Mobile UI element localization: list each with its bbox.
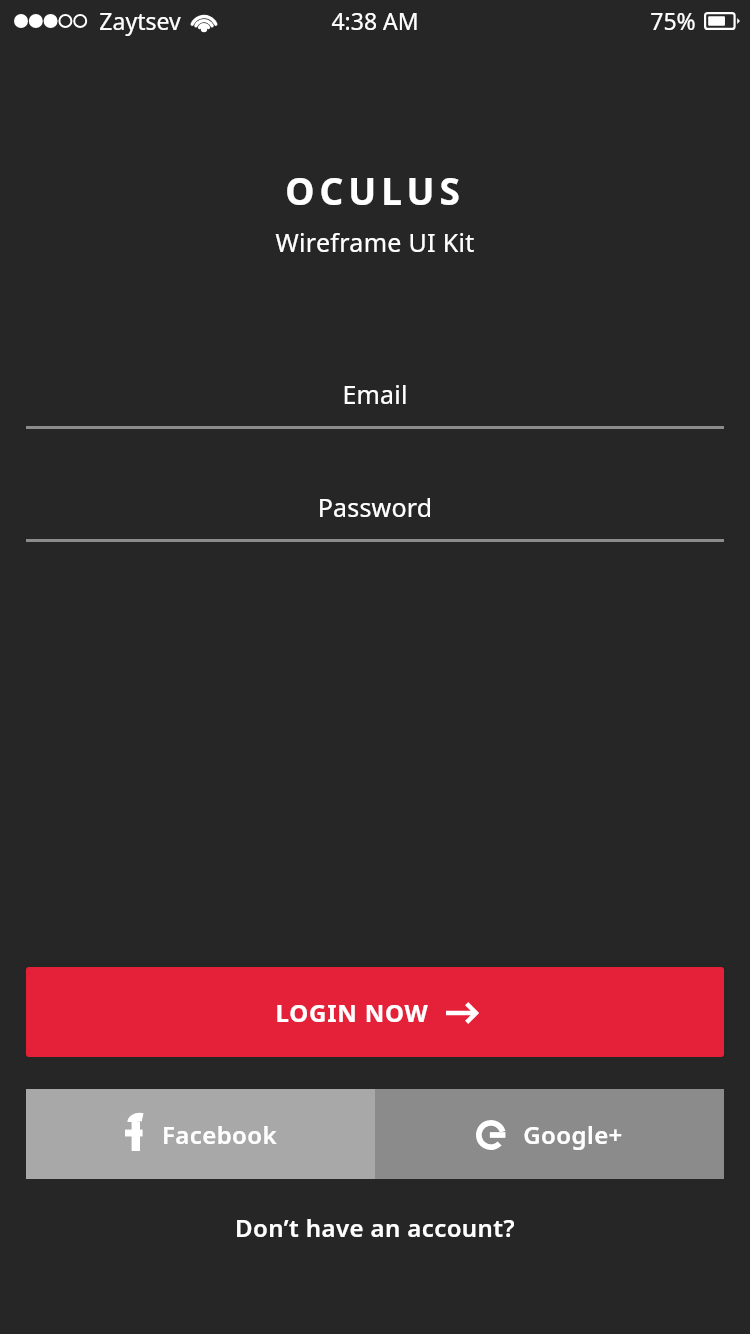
staticText: Don’t have an account? (235, 1211, 515, 1244)
staticText: Email (26, 377, 724, 411)
other: Sign in with Facebook (125, 1117, 145, 1151)
staticText: Google+ (523, 1118, 623, 1151)
staticText: OCULUS (0, 165, 750, 215)
other: Sign in with Google Plus (476, 1120, 506, 1150)
staticText: Facebook (162, 1118, 277, 1151)
button[interactable]: Password (26, 490, 724, 542)
button[interactable]: Don’t have an account? (0, 1211, 750, 1244)
button[interactable]: Sign in with Google Plus (375, 1089, 724, 1179)
staticText: Wireframe UI Kit (0, 225, 750, 259)
button[interactable]: Email (26, 377, 724, 429)
button[interactable]: LOGIN NOW (26, 967, 724, 1057)
button[interactable]: Sign in with Facebook (26, 1089, 375, 1179)
staticText: LOGIN NOW (275, 996, 429, 1029)
staticText: Zaytsev (99, 5, 181, 36)
staticText: 4:38 AM (331, 5, 419, 36)
staticText: Password (26, 490, 724, 524)
other: Login now (446, 1000, 476, 1026)
staticText: 75% (650, 5, 696, 36)
